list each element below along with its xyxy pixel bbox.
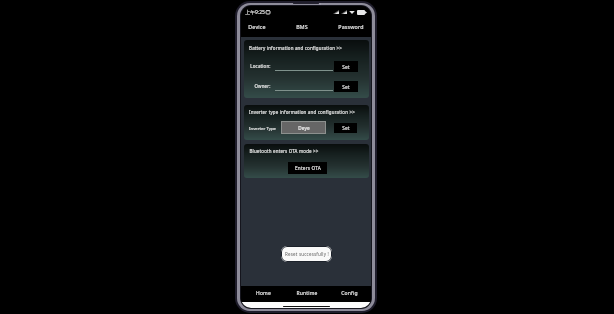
button[interactable]: Runtime: [285, 286, 328, 301]
staticText: Runtime: [296, 290, 318, 297]
staticText: Inverter Type: [249, 125, 276, 131]
button[interactable]: Password: [334, 18, 368, 34]
staticText: Battery information and configuration >>: [249, 45, 342, 51]
button[interactable]: Config: [328, 286, 371, 301]
staticText: Set: [342, 125, 350, 131]
button[interactable]: Enters OTA: [288, 162, 327, 174]
button[interactable]: Battery information and configuration >>: [249, 45, 342, 51]
staticText: Enters OTA: [295, 165, 321, 171]
button[interactable]: Set: [334, 123, 357, 133]
staticText: Set: [342, 64, 350, 70]
staticText: Set: [342, 84, 350, 90]
button[interactable]: Set: [334, 61, 358, 72]
button[interactable]: Inverter type information and configurat…: [249, 109, 355, 115]
button[interactable]: Home: [241, 286, 285, 301]
staticText: Location:: [250, 63, 271, 69]
button[interactable]: Deye: [281, 121, 326, 134]
staticText: BMS: [296, 23, 308, 30]
staticText: Password: [338, 23, 364, 30]
staticText: Owner:: [254, 83, 271, 89]
button[interactable]: Set: [334, 81, 358, 92]
staticText: Config: [341, 290, 358, 297]
staticText: Bluetooth enters OTA mode >>: [249, 148, 319, 154]
staticText: Inverter type information and configurat…: [249, 109, 355, 115]
staticText: 上午9:25: [245, 9, 265, 16]
button[interactable]: Bluetooth enters OTA mode >>: [249, 148, 319, 154]
staticText: Deye: [298, 125, 310, 131]
staticText: Reset successfully !: [285, 251, 329, 257]
staticText: Device: [248, 23, 266, 30]
button[interactable]: Device: [244, 18, 270, 34]
button[interactable]: BMS: [292, 18, 312, 34]
staticText: Home: [256, 290, 271, 297]
button[interactable]: Reset successfully !: [281, 246, 332, 262]
